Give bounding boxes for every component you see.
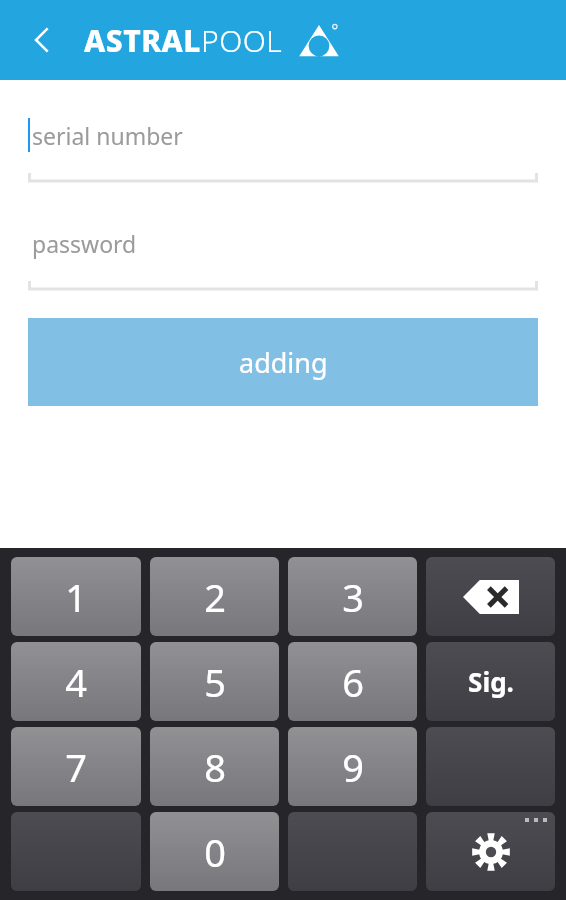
button[interactable]: 3 bbox=[288, 557, 417, 636]
button[interactable]: 7 bbox=[11, 727, 141, 806]
button[interactable]: 4 bbox=[11, 642, 141, 721]
staticText: 4 bbox=[65, 656, 87, 708]
staticText: 7 bbox=[65, 741, 87, 793]
staticText: 3 bbox=[342, 571, 364, 623]
button[interactable]: 9 bbox=[288, 727, 417, 806]
staticText: 9 bbox=[342, 741, 364, 793]
staticText: 8 bbox=[204, 741, 226, 793]
staticText: password bbox=[32, 228, 137, 259]
button[interactable]: password bbox=[28, 220, 538, 291]
staticText: 6 bbox=[342, 656, 364, 708]
button[interactable]: Sig. bbox=[426, 642, 555, 721]
button[interactable]: Settings bbox=[426, 812, 555, 891]
staticText: POOL bbox=[201, 20, 283, 61]
button[interactable]: serial number bbox=[28, 112, 538, 183]
staticText: serial number bbox=[32, 120, 183, 151]
button[interactable]: Backspace bbox=[426, 557, 555, 636]
button[interactable]: 5 bbox=[150, 642, 279, 721]
staticText: adding bbox=[239, 344, 328, 381]
staticText: ASTRAL bbox=[84, 20, 201, 61]
staticText: 2 bbox=[204, 571, 226, 623]
button[interactable]: Blank key bbox=[426, 727, 555, 806]
button[interactable]: 2 bbox=[150, 557, 279, 636]
button[interactable]: 6 bbox=[288, 642, 417, 721]
button[interactable]: 1 bbox=[11, 557, 141, 636]
staticText: 5 bbox=[204, 656, 226, 708]
button[interactable]: 0 bbox=[150, 812, 279, 891]
button[interactable]: 8 bbox=[150, 727, 279, 806]
button[interactable]: Blank key bbox=[11, 812, 141, 891]
staticText: 1 bbox=[65, 571, 87, 623]
button[interactable]: adding bbox=[28, 318, 538, 406]
button[interactable]: Back bbox=[18, 16, 66, 64]
staticText: Sig. bbox=[468, 664, 514, 699]
staticText: 0 bbox=[204, 826, 226, 878]
button[interactable]: Blank key bbox=[288, 812, 417, 891]
